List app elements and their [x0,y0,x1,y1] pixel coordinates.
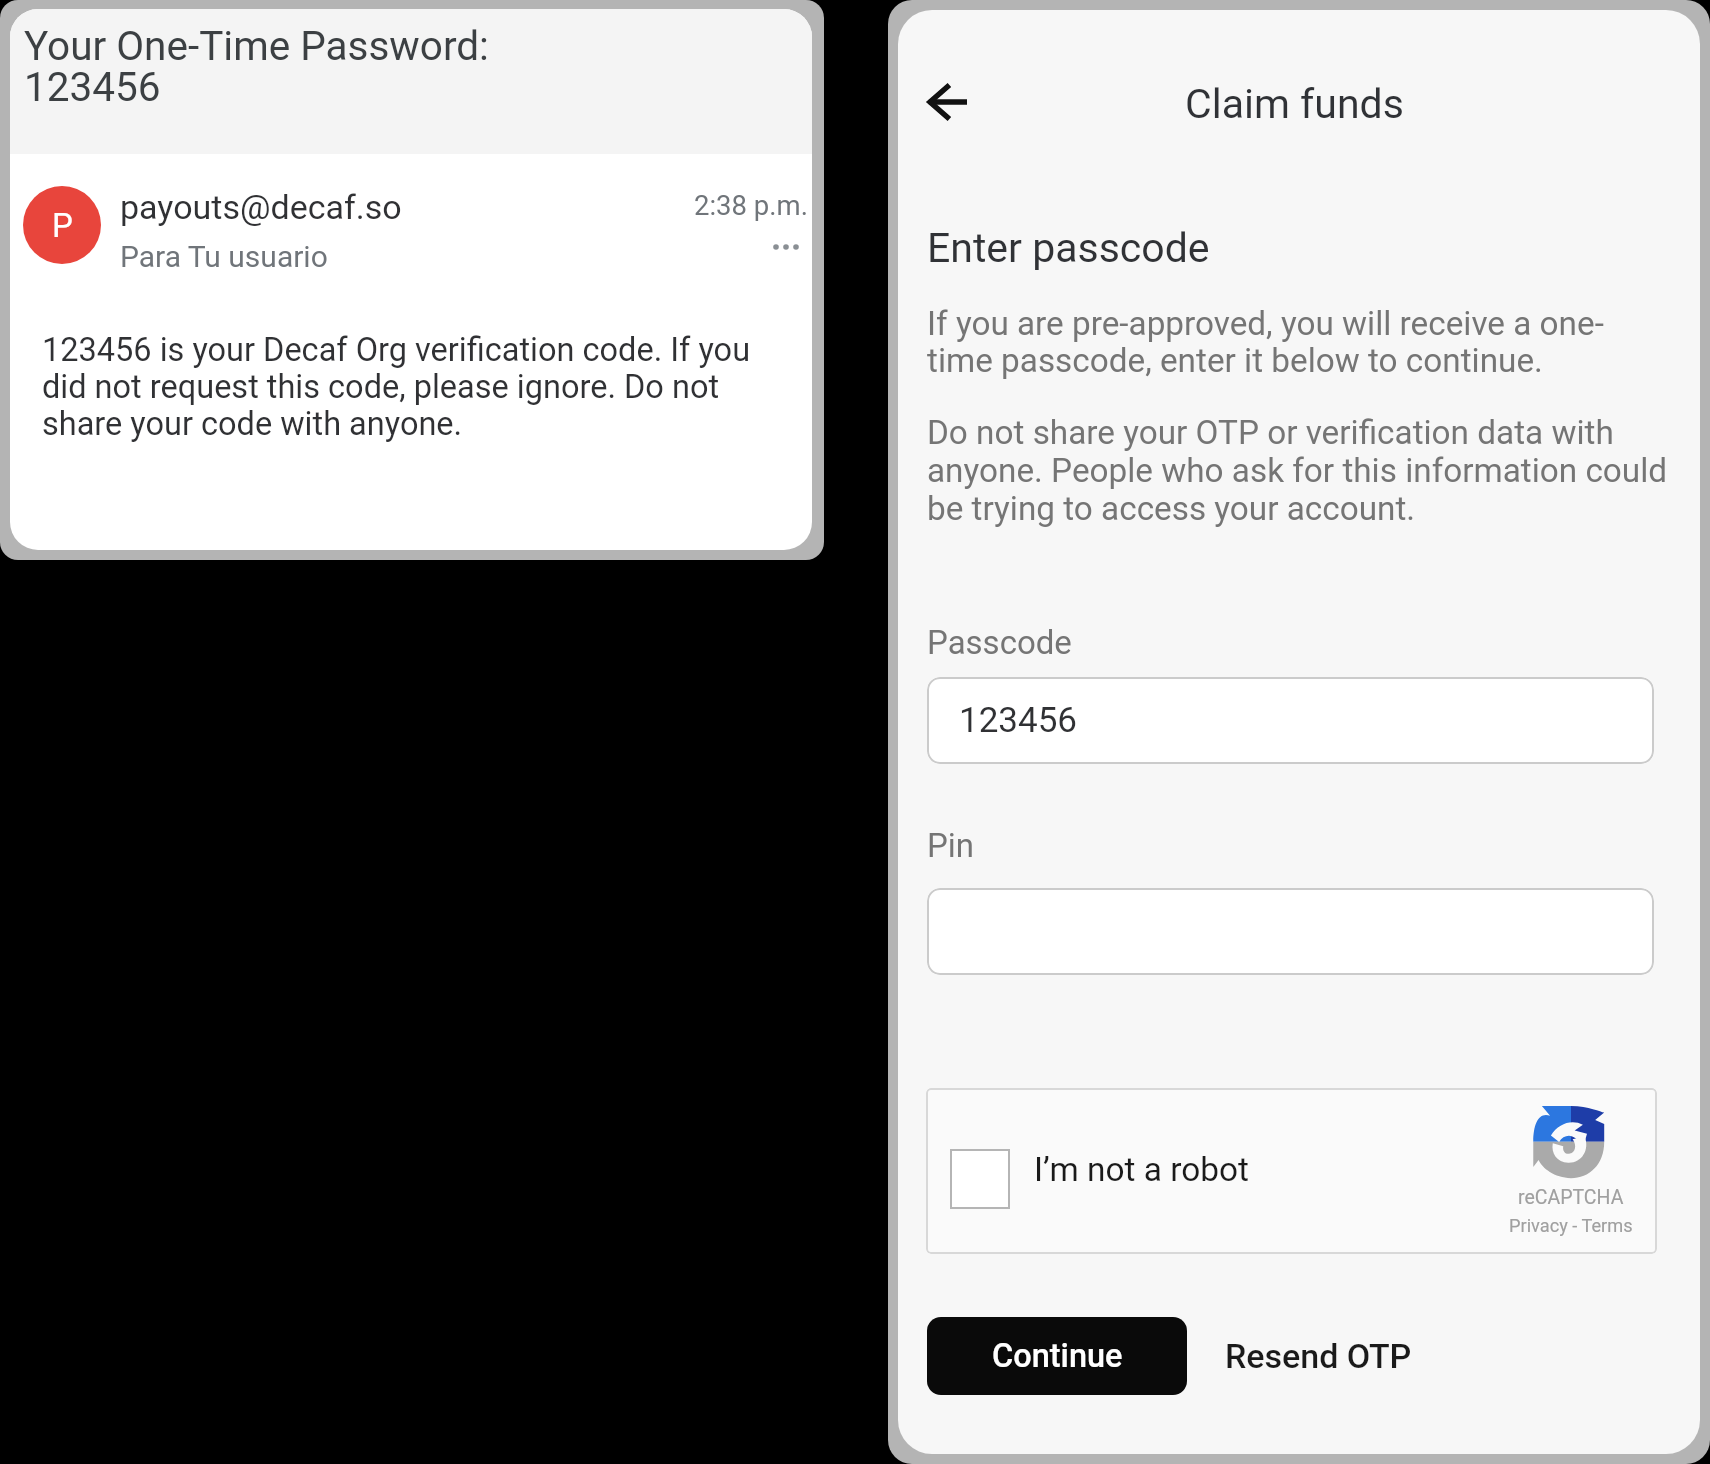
button[interactable]: Your One-Time Password: [10,9,812,550]
staticText: 123456 is your Decaf Org verification co… [42,331,766,443]
staticText: payouts@decaf.so [120,187,402,227]
staticText: P [52,206,73,245]
staticText: Resend OTP [1225,1336,1412,1376]
staticText: 123456 [24,63,161,110]
staticText: Enter passcode [927,224,1210,272]
staticText: Claim funds [1185,80,1404,128]
button[interactable]: Back [907,62,987,142]
staticText: reCAPTCHA [1518,1186,1624,1209]
button[interactable]: I'm not a robot checkbox [950,1149,1010,1209]
button[interactable]: 123456 [927,677,1654,764]
staticText: 123456 [959,700,1078,741]
staticText: 2:38 p.m. [694,189,808,221]
staticText: Your One-Time Password: [24,22,489,69]
button[interactable]: Pin input [927,888,1654,975]
staticText: Passcode [927,623,1072,662]
staticText: Do not share your OTP or verification da… [927,413,1675,528]
staticText: Pin [927,826,975,865]
button[interactable]: Resend OTP [1209,1317,1459,1395]
button[interactable]: More options [765,226,807,268]
staticText: Privacy - Terms [1509,1215,1633,1236]
staticText: Para Tu usuario [120,239,328,274]
staticText: If you are pre-approved, you will receiv… [927,304,1639,380]
staticText: Continue [992,1337,1123,1375]
button[interactable]: Continue [927,1317,1187,1395]
staticText: I’m not a robot [1034,1150,1249,1189]
